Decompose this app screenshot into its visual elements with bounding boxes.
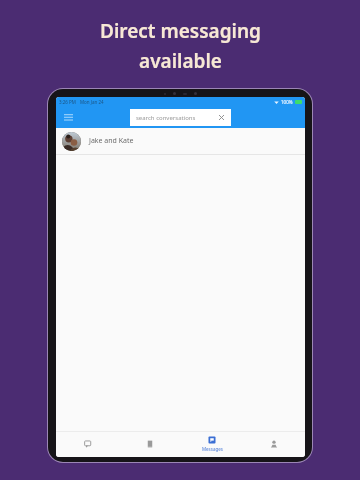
button[interactable]: Profile <box>243 431 305 457</box>
staticText: available <box>139 48 222 74</box>
button[interactable]: search conversations <box>130 109 231 126</box>
button[interactable]: Messages <box>181 431 243 457</box>
staticText: 100% <box>281 99 293 105</box>
staticText: Mon Jan 24 <box>80 99 104 105</box>
button[interactable]: Open navigation menu <box>61 110 75 124</box>
staticText: Direct messaging <box>100 18 261 44</box>
staticText: search conversations <box>136 114 196 122</box>
button[interactable]: Chats <box>56 431 119 457</box>
staticText: 3:26 PM <box>59 99 76 105</box>
button[interactable]: Clear search <box>217 113 226 122</box>
staticText: Messages <box>202 446 223 452</box>
button[interactable]: Jake and Kate <box>56 128 305 154</box>
staticText: Jake and Kate <box>89 136 134 146</box>
button[interactable]: Library <box>119 431 181 457</box>
